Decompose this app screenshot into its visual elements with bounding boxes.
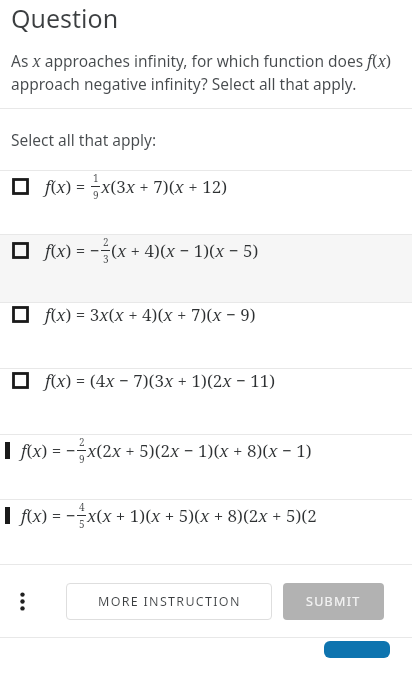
staticText: Select all that apply: xyxy=(11,129,157,150)
staticText: f(x) = (4x − 7)(3x + 1)(2x − 11) xyxy=(45,369,276,392)
button[interactable]: f(x) = 3x(x + 4)(x + 7)(x − 9) xyxy=(0,303,412,368)
staticText: f(x) = − xyxy=(21,439,76,462)
staticText: (x + 4)(x − 1)(x − 5) xyxy=(111,239,259,262)
staticText: f(x) = − xyxy=(21,504,76,527)
button[interactable]: MORE INSTRUCTION xyxy=(66,583,272,620)
staticText: f(x) = 3x(x + 4)(x + 7)(x − 9) xyxy=(45,303,256,326)
staticText: 3 xyxy=(103,252,109,266)
staticText: 9 xyxy=(79,452,85,466)
staticText: x(2x + 5)(2x − 1)(x + 8)(x − 1) xyxy=(87,439,312,462)
staticText: f(x) = xyxy=(45,175,90,198)
staticText: As x approaches infinity, for which func… xyxy=(11,50,392,95)
button[interactable]: Next xyxy=(324,641,390,658)
staticText: Question xyxy=(11,1,119,35)
button[interactable]: SUBMIT xyxy=(283,583,384,620)
staticText: 2 xyxy=(103,235,109,249)
staticText: MORE INSTRUCTION xyxy=(98,593,241,610)
staticText: 5 xyxy=(79,517,85,531)
staticText: x(3x + 7)(x + 12) xyxy=(101,175,228,198)
staticText: 9 xyxy=(93,188,99,202)
staticText: 1 xyxy=(93,171,99,185)
button[interactable]: More options xyxy=(0,579,44,623)
staticText: 2 xyxy=(79,435,85,449)
button[interactable]: f(x) = (4x − 7)(3x + 1)(2x − 11) xyxy=(0,369,412,434)
button[interactable]: f(x) = − xyxy=(0,235,412,302)
staticText: SUBMIT xyxy=(306,593,361,610)
staticText: x(x + 1)(x + 5)(x + 8)(2x + 5)(2 xyxy=(87,504,317,527)
button[interactable]: f(x) = − xyxy=(0,435,412,499)
button[interactable]: f(x) = xyxy=(0,171,412,234)
staticText: 4 xyxy=(79,500,85,514)
button[interactable]: f(x) = − xyxy=(0,500,412,564)
staticText: f(x) = − xyxy=(45,239,100,262)
